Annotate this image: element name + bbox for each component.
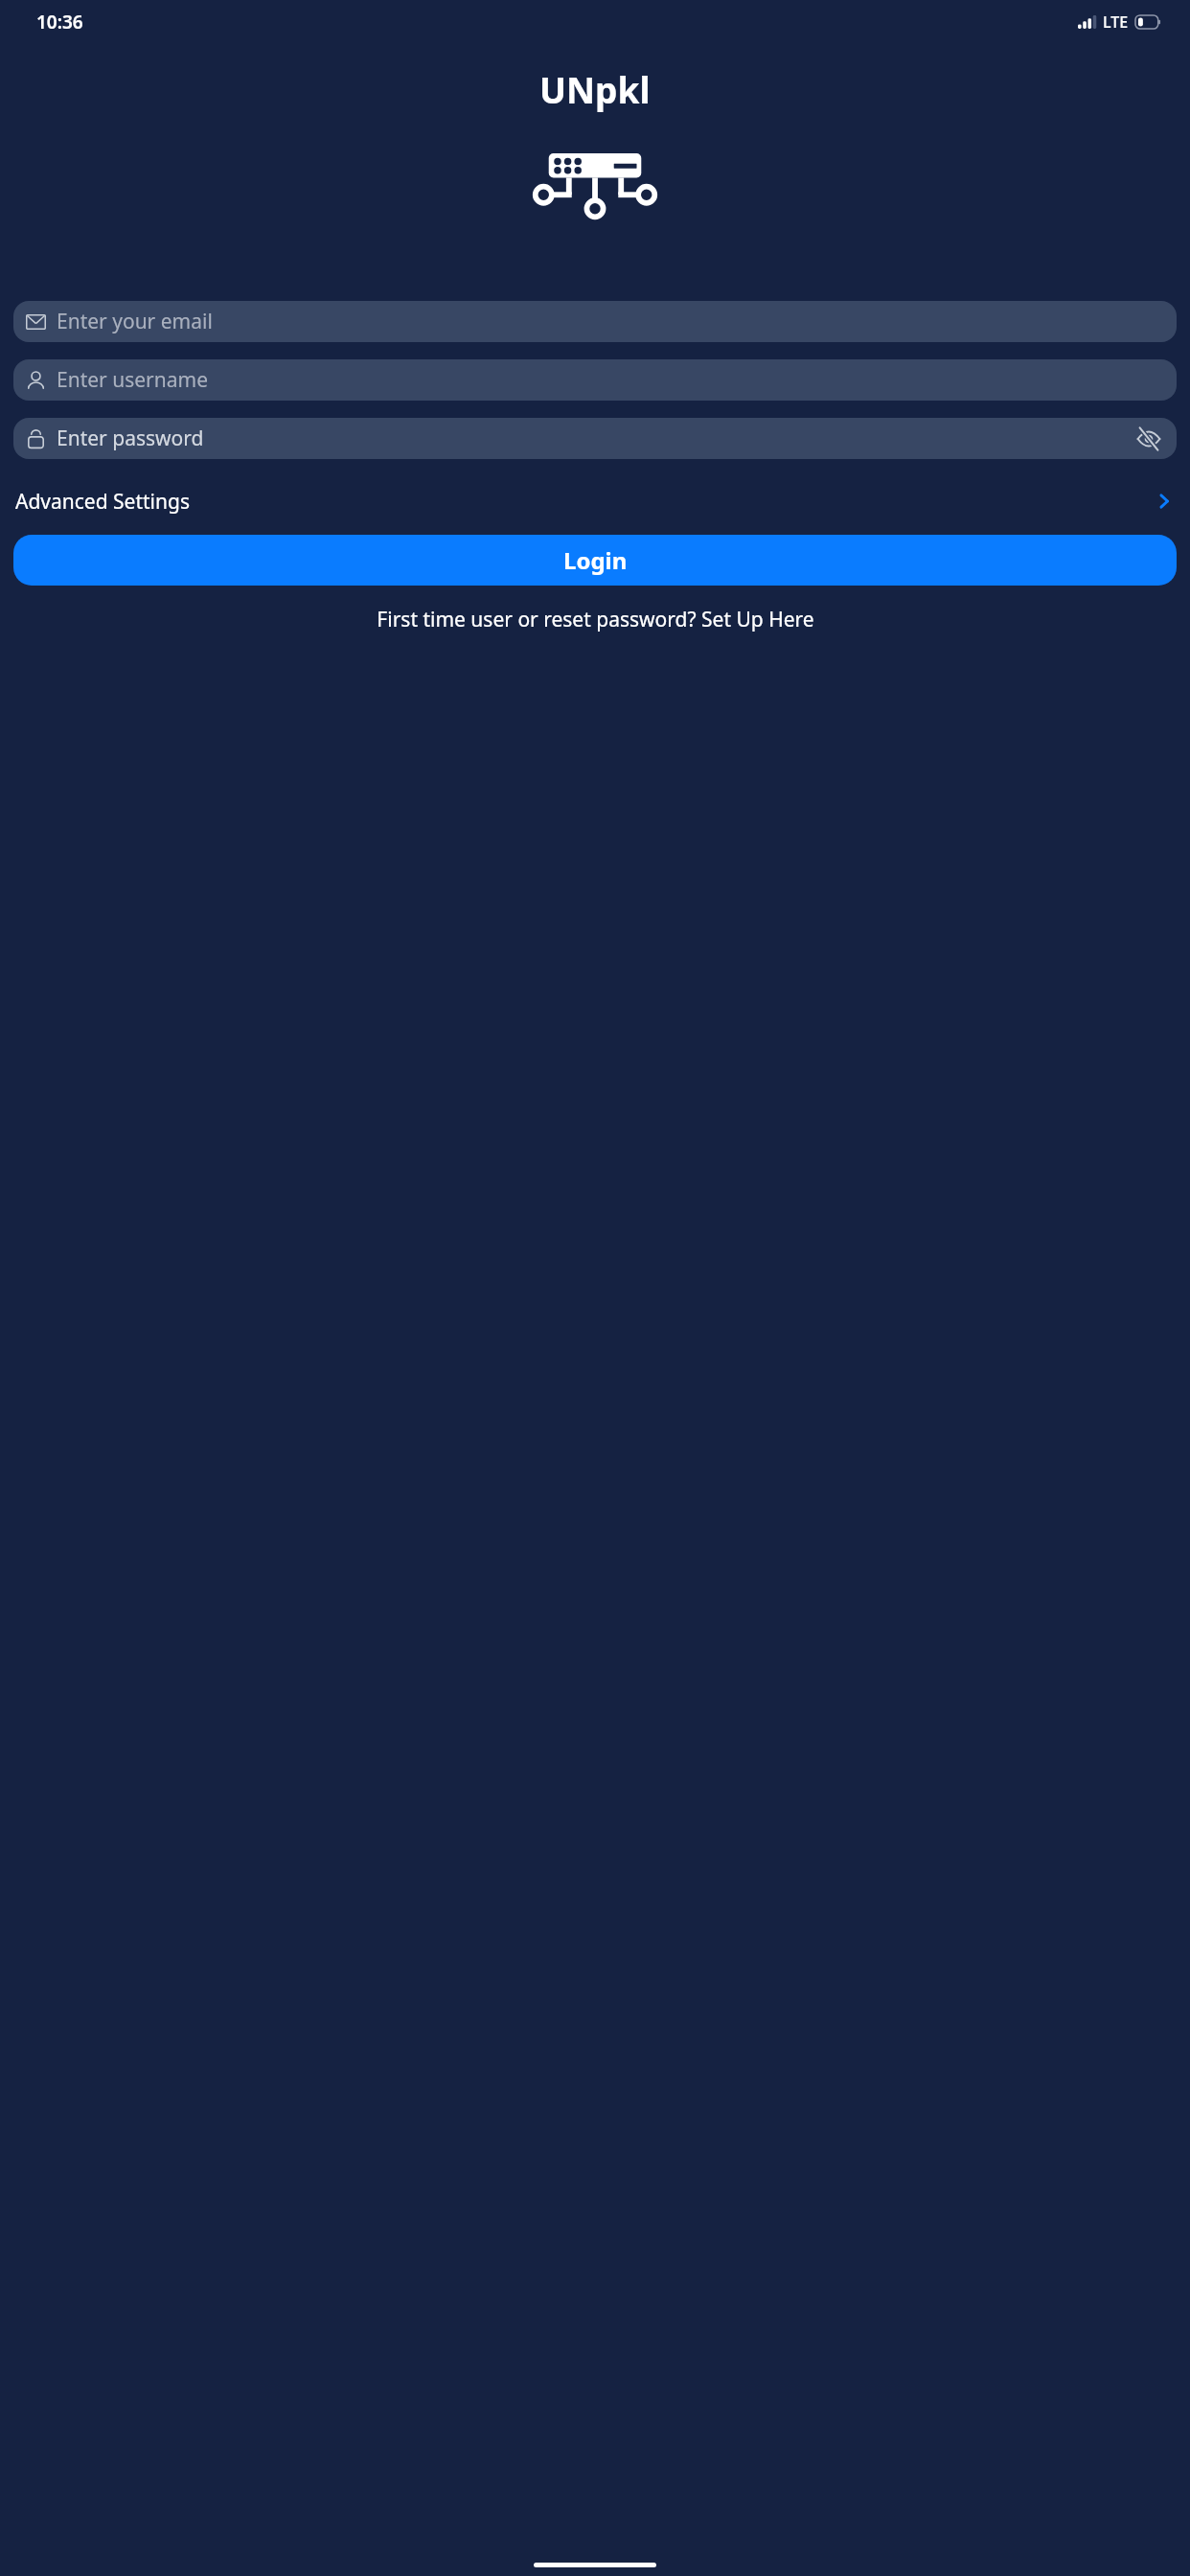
staticText: Enter your email: [57, 308, 213, 335]
staticText: Enter password: [57, 425, 204, 452]
button[interactable]: Username: [13, 359, 1177, 401]
button[interactable]: First time user or reset password? Set U…: [0, 600, 1190, 639]
staticText: LTE: [1103, 11, 1129, 33]
button[interactable]: Toggle password visibility: [1134, 425, 1163, 453]
staticText: Enter username: [57, 366, 209, 394]
staticText: UNpkl: [539, 65, 651, 113]
staticText: First time user or reset password? Set U…: [377, 606, 814, 633]
button[interactable]: Password: [13, 418, 1177, 459]
button[interactable]: Advanced Settings: [13, 478, 1177, 524]
staticText: Advanced Settings: [15, 488, 190, 516]
staticText: Login: [563, 544, 628, 576]
staticText: 10:36: [36, 10, 83, 34]
button[interactable]: Email: [13, 301, 1177, 342]
button[interactable]: Login: [13, 535, 1177, 586]
